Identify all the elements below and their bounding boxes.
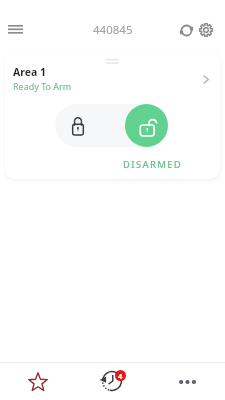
button[interactable]: Arm (55, 104, 125, 147)
staticText: DISARMED (123, 158, 183, 171)
staticText: Ready To Arm (13, 80, 72, 92)
button[interactable]: Open area (196, 68, 218, 90)
button[interactable]: Favorites (24, 368, 52, 396)
button[interactable]: History (96, 364, 130, 398)
button[interactable]: Area 1 (5, 52, 220, 179)
button[interactable]: Disarm (125, 104, 168, 147)
button[interactable]: Menu (1, 15, 29, 43)
staticText: 440845 (93, 22, 133, 38)
button[interactable]: More options (172, 368, 202, 398)
staticText: 4 (118, 371, 123, 381)
button[interactable]: Settings (192, 16, 220, 44)
button[interactable]: Sync (172, 16, 200, 44)
staticText: Area 1 (13, 65, 47, 79)
